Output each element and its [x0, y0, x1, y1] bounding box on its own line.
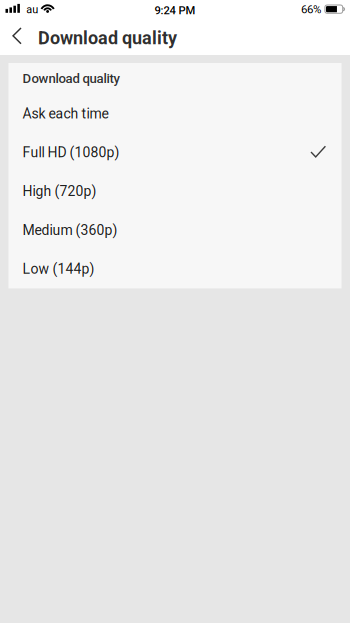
staticText: Medium (360p) — [23, 222, 118, 238]
button[interactable]: High (720p) — [8, 172, 341, 211]
button[interactable]: Back — [6, 21, 38, 55]
staticText: 9:24 PM — [154, 4, 195, 17]
staticText: Full HD (1080p) — [23, 144, 120, 161]
staticText: 66% — [301, 3, 321, 16]
staticText: Download quality — [38, 27, 177, 49]
staticText: Ask each time — [23, 105, 109, 122]
staticText: Download quality — [23, 71, 120, 86]
button[interactable]: Low (144p) — [8, 250, 341, 288]
staticText: Low (144p) — [23, 261, 95, 277]
staticText: High (720p) — [23, 183, 97, 199]
button[interactable]: Ask each time — [8, 94, 341, 133]
button[interactable]: Medium (360p) — [8, 211, 341, 250]
button[interactable]: Full HD (1080p) — [8, 133, 341, 172]
staticText: au — [26, 3, 38, 16]
